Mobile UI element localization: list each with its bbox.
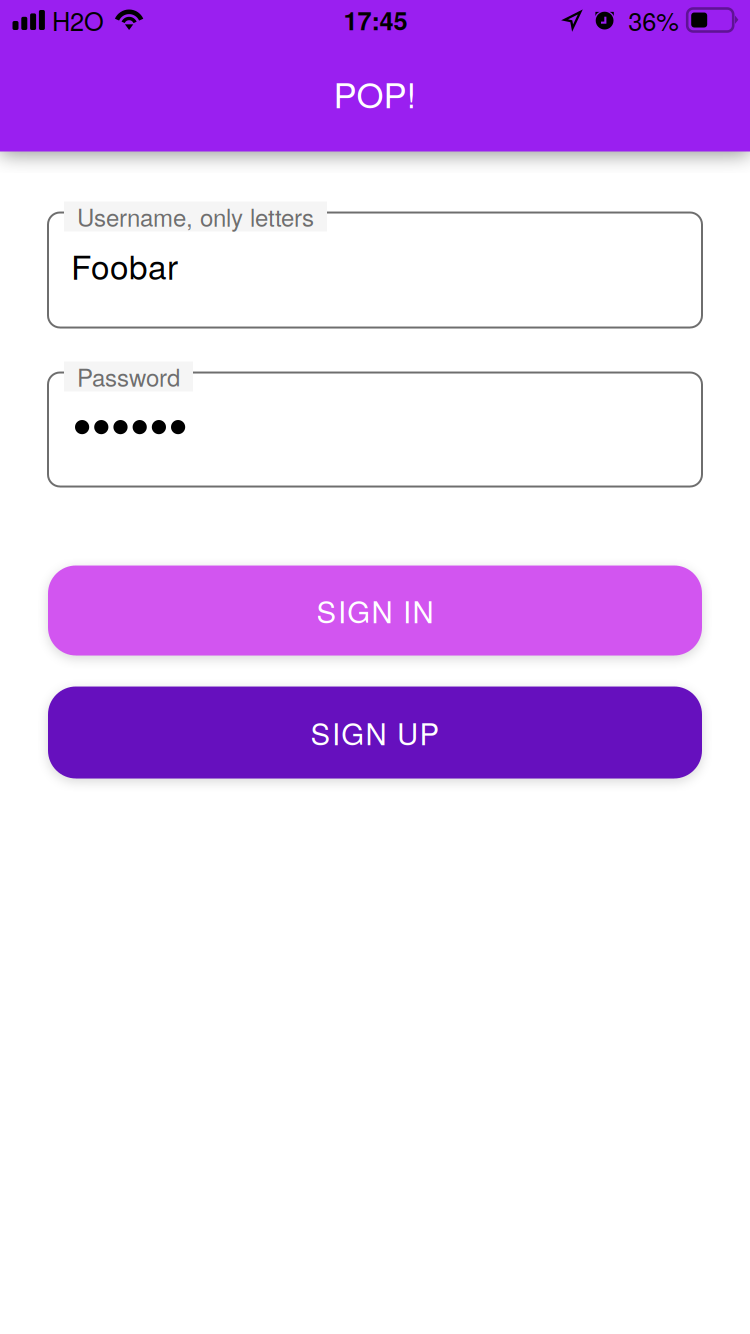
staticText: Password (77, 359, 180, 394)
staticText: Foobar (71, 241, 178, 289)
staticText: 17:45 (343, 2, 407, 38)
staticText: SIGN UP (311, 711, 439, 753)
staticText: Username, only letters (77, 199, 314, 234)
staticText: 36% (628, 2, 679, 38)
staticText: POP! (333, 68, 416, 118)
staticText: SIGN IN (317, 589, 433, 631)
button[interactable]: SIGN UP (48, 686, 702, 778)
staticText: H2O (52, 2, 104, 38)
button[interactable]: SIGN IN (48, 565, 702, 655)
